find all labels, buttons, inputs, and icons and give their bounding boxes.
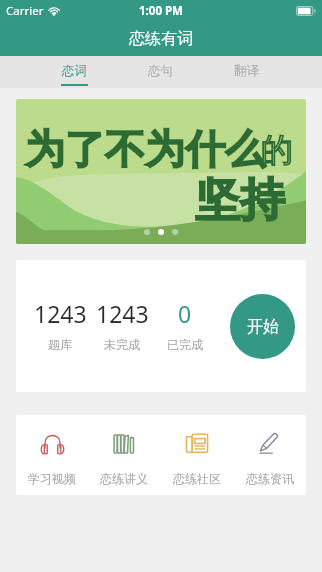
other: 恋练社区 <box>185 432 209 454</box>
staticText: 翻译 <box>234 63 259 79</box>
button[interactable]: 翻译 <box>233 56 260 88</box>
button[interactable]: 恋练资讯 <box>233 415 306 495</box>
button[interactable]: 为了不为什么 <box>16 99 306 244</box>
staticText: 未完成 <box>104 337 140 352</box>
staticText: 题库 <box>48 337 72 352</box>
other: 学习视频 <box>40 432 65 455</box>
staticText: 恋练社区 <box>173 471 221 486</box>
staticText: 开始 <box>247 317 279 337</box>
staticText: 1243 <box>96 298 149 329</box>
button[interactable]: 开始 <box>230 294 295 359</box>
staticText: 1:00 PM <box>139 3 183 19</box>
staticText: 0 <box>178 298 192 329</box>
staticText: 恋词 <box>62 63 87 79</box>
button[interactable]: 恋练讲义 <box>88 415 160 495</box>
staticText: 已完成 <box>167 337 203 352</box>
button[interactable]: 恋词 <box>61 56 88 88</box>
staticText: 恋练有词 <box>129 29 193 49</box>
staticText: 1243 <box>34 298 87 329</box>
staticText: 恋练资讯 <box>246 471 294 486</box>
staticText: 坚持 <box>195 172 285 229</box>
staticText: Carrier <box>6 3 44 19</box>
other: 恋练讲义 <box>113 433 135 454</box>
staticText: 学习视频 <box>28 471 76 486</box>
button[interactable]: 学习视频 <box>16 415 88 495</box>
staticText: 的 <box>261 130 293 170</box>
other: 恋练资讯 <box>258 432 282 454</box>
button[interactable]: 恋句 <box>147 56 174 88</box>
staticText: 恋练讲义 <box>100 471 148 486</box>
button[interactable]: 恋练社区 <box>160 415 233 495</box>
staticText: 为了不为什么 <box>25 124 265 174</box>
staticText: 恋句 <box>148 63 173 79</box>
